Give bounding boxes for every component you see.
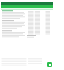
button[interactable]: Compose (47, 62, 52, 67)
